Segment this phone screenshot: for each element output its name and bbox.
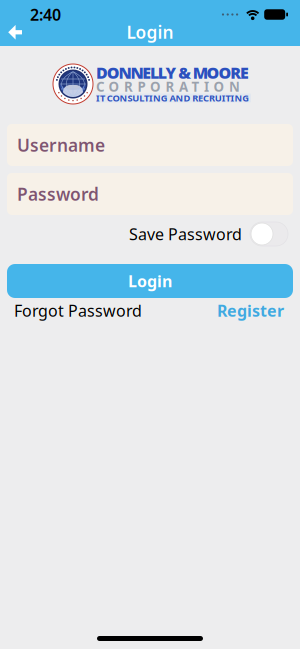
button[interactable]: Login [7, 264, 293, 298]
staticText: 2:40 [30, 4, 61, 25]
textField[interactable] [7, 130, 293, 160]
button[interactable]: Back [0, 24, 30, 39]
secureTextField[interactable] [7, 179, 293, 209]
staticText: Username [17, 133, 105, 156]
staticText: Login [128, 270, 172, 292]
staticText: Password [17, 182, 99, 205]
staticText: Login [126, 20, 173, 43]
staticText: Save Password [129, 223, 242, 245]
staticText: CORPORATION [96, 78, 240, 95]
staticText: Forgot Password [14, 300, 142, 321]
button[interactable]: Save Password [250, 222, 288, 246]
button[interactable]: Forgot Password [14, 300, 142, 321]
button[interactable]: Register [217, 300, 284, 321]
staticText: Register [217, 300, 284, 321]
staticText: IT CONSULTING AND RECRUITING [96, 92, 249, 104]
staticText: DONNELLY & MOORE [96, 62, 249, 83]
